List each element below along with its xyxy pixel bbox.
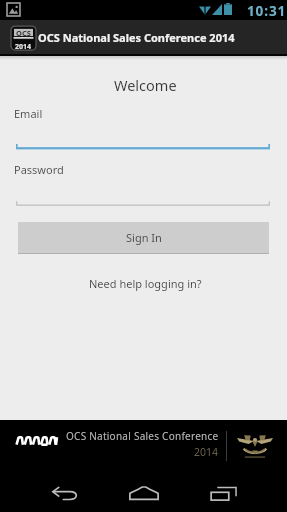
staticText: OCS National Sales Conference 2014 <box>38 30 235 45</box>
button[interactable]: Sign In <box>18 222 269 254</box>
staticText: Welcome <box>114 75 177 95</box>
staticText: OCS National Sales Conference <box>66 429 219 443</box>
staticText: OCS <box>16 28 31 38</box>
staticText: Email <box>14 106 43 121</box>
button[interactable]: Home <box>120 475 168 511</box>
staticText: Password <box>14 162 64 177</box>
button[interactable]: Recent apps <box>200 475 248 511</box>
staticText: 2014 <box>194 445 219 459</box>
staticText: Sign In <box>126 230 162 245</box>
staticText: 2014 <box>15 42 32 50</box>
button[interactable]: Back <box>41 475 89 511</box>
button[interactable]: Need help logging in? <box>83 274 208 293</box>
button[interactable] <box>16 104 270 151</box>
staticText: 10:31 <box>247 2 287 20</box>
button[interactable] <box>16 160 270 207</box>
